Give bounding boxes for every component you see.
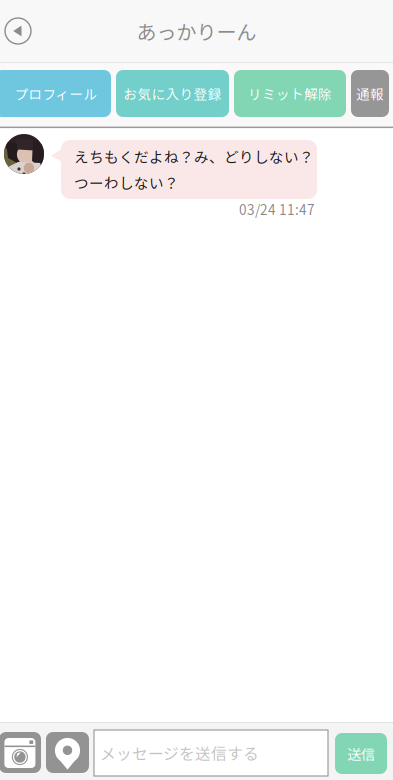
button[interactable]: リミット解除	[234, 70, 346, 117]
button[interactable]: メッセージを送信する	[94, 730, 328, 776]
button[interactable]: プロフィール	[0, 70, 111, 117]
staticText: あっかりーん	[136, 16, 256, 45]
button[interactable]: Back	[4, 17, 32, 45]
staticText: 送信	[347, 743, 375, 764]
staticText: リミット解除	[248, 84, 332, 103]
button[interactable]: Location	[46, 732, 89, 773]
staticText: 通報	[356, 84, 384, 103]
staticText: お気に入り登録	[123, 84, 221, 103]
staticText: つーわしない？	[74, 172, 179, 193]
button[interactable]: Camera	[0, 732, 41, 773]
button[interactable]: お気に入り登録	[116, 70, 229, 117]
staticText: 03/24 11:47	[239, 199, 315, 219]
staticText: プロフィール	[14, 84, 97, 103]
staticText: えちもくだよね？み、どりしない？	[74, 146, 314, 167]
button[interactable]: 通報	[351, 70, 389, 117]
staticText: メッセージを送信する	[100, 742, 259, 764]
button[interactable]: 送信	[335, 733, 387, 774]
